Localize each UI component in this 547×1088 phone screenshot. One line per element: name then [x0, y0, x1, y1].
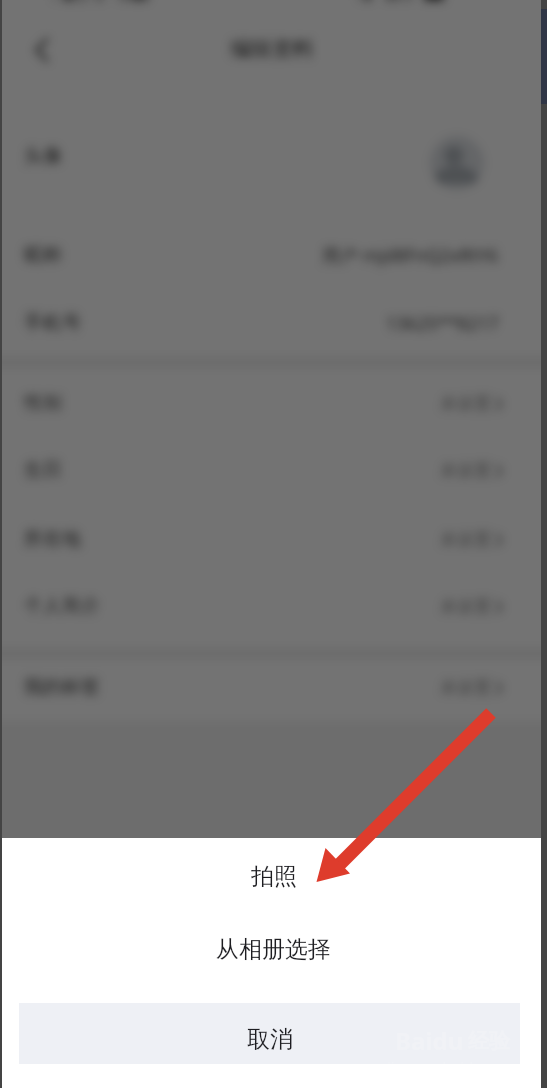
staticText: 10:28: [114, 0, 150, 5]
staticText: 拍照: [251, 862, 297, 891]
staticText: 4G: [354, 0, 373, 5]
button[interactable]: 我的标签: [2, 657, 541, 717]
staticText: 头像: [24, 144, 62, 168]
staticText: 所在地: [24, 527, 81, 551]
staticText: 86%: [385, 0, 413, 5]
staticText: 昵称: [24, 243, 62, 267]
staticText: 生日: [24, 458, 62, 482]
staticText: 个人简介: [24, 594, 100, 618]
staticText: 未设置: [440, 677, 491, 698]
staticText: 编辑资料: [230, 36, 314, 62]
button[interactable]: 个人简介: [2, 576, 541, 636]
staticText: 手机号: [24, 311, 81, 335]
button[interactable]: 头像: [2, 96, 541, 216]
staticText: 未设置: [440, 596, 491, 617]
button[interactable]: 性别: [2, 373, 541, 433]
button[interactable]: 取消: [19, 1003, 520, 1064]
staticText: 用户 mjd8FnQ2xRtY6: [322, 243, 499, 268]
button[interactable]: 拍照: [0, 838, 547, 914]
button[interactable]: 生日: [2, 440, 541, 500]
staticText: 中国移动: [48, 0, 104, 5]
staticText: 未设置: [440, 460, 491, 481]
staticText: 13625**8217: [386, 311, 499, 336]
button[interactable]: 手机号: [2, 293, 541, 353]
button[interactable]: 昵称: [2, 225, 541, 285]
staticText: 我的标签: [24, 675, 100, 699]
button[interactable]: Back: [24, 30, 60, 70]
staticText: 性别: [24, 391, 62, 415]
staticText: 未设置: [440, 393, 491, 414]
staticText: jingyan.baidu.com: [387, 1057, 517, 1077]
staticText: 取消: [247, 1025, 293, 1054]
staticText: 未设置: [440, 529, 491, 550]
button[interactable]: 所在地: [2, 509, 541, 569]
button[interactable]: 从相册选择: [0, 914, 547, 985]
staticText: 从相册选择: [216, 935, 331, 964]
